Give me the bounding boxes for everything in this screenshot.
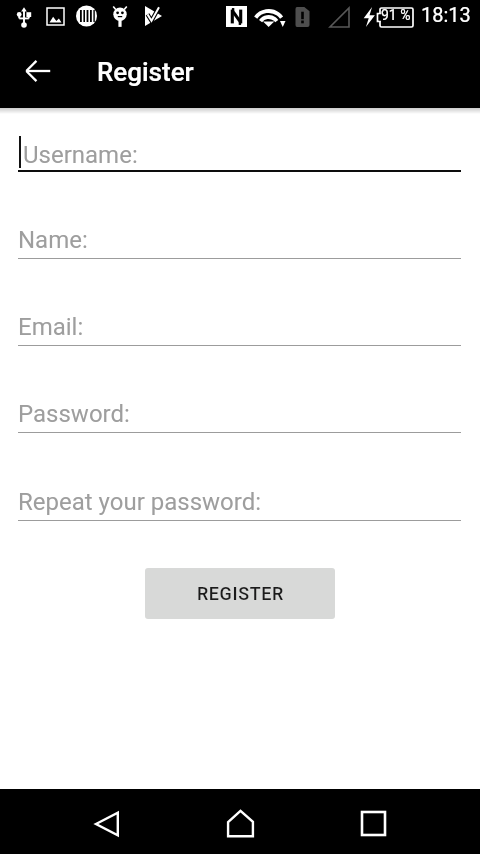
staticText: REGISTER bbox=[197, 583, 284, 604]
button[interactable]: Password: bbox=[0, 391, 480, 433]
staticText: Register bbox=[97, 57, 194, 87]
button[interactable]: REGISTER bbox=[145, 568, 335, 619]
button[interactable]: Repeat your password: bbox=[0, 479, 480, 521]
staticText: 91 % bbox=[381, 7, 411, 23]
button[interactable]: Recent apps bbox=[337, 789, 409, 854]
staticText: Password: bbox=[18, 400, 130, 428]
button[interactable]: Back bbox=[71, 789, 143, 854]
staticText: 18:13 bbox=[421, 3, 471, 26]
button[interactable]: Back bbox=[14, 47, 62, 95]
button[interactable]: Home bbox=[204, 789, 276, 854]
button[interactable]: Username: bbox=[0, 130, 480, 172]
button[interactable]: Email: bbox=[0, 304, 480, 346]
staticText: Username: bbox=[23, 141, 138, 169]
staticText: Name: bbox=[18, 226, 88, 254]
staticText: Repeat your password: bbox=[18, 488, 262, 516]
staticText: Email: bbox=[18, 313, 84, 341]
button[interactable]: Name: bbox=[0, 217, 480, 259]
